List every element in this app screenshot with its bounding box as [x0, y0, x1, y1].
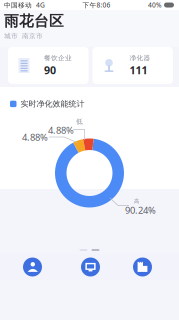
staticText: 90 — [44, 63, 56, 77]
staticText: 4.88% — [22, 131, 48, 143]
staticText: 下午8:06 — [82, 1, 110, 9]
staticText: 40% — [148, 1, 162, 9]
staticText: 4.88% — [48, 124, 74, 136]
staticText: 净化器 — [129, 54, 150, 62]
staticText: 实时净化效能统计 — [20, 99, 84, 109]
staticText: 90.24% — [125, 204, 156, 216]
button[interactable]: 监控 — [61, 254, 119, 280]
button[interactable]: 净化器 — [92, 47, 173, 84]
button[interactable]: 企业 — [119, 254, 179, 280]
staticText: 城市 南京市 — [4, 32, 43, 40]
staticText: 雨花台区 — [4, 12, 64, 30]
staticText: 低 — [76, 117, 83, 126]
staticText: 111 — [129, 63, 147, 77]
staticText: 中国移动 4G — [4, 1, 45, 9]
button[interactable]: 餐饮企业 — [8, 47, 88, 84]
button[interactable]: 用户 — [0, 254, 61, 280]
staticText: 餐饮企业 — [44, 54, 72, 62]
staticText: 高 — [134, 198, 139, 205]
